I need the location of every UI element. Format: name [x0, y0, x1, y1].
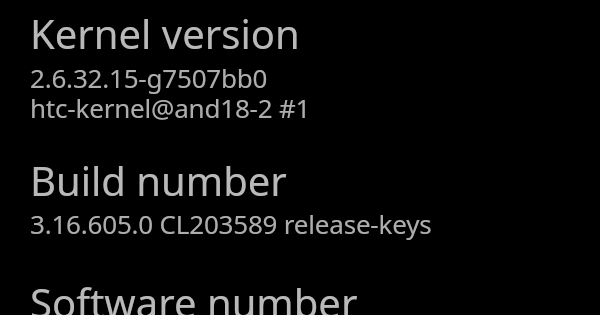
staticText: Kernel version — [30, 6, 300, 60]
staticText: 3.16.605.0 CL203589 release-keys — [30, 206, 432, 241]
button[interactable]: Build number — [0, 153, 600, 275]
staticText: Build number — [30, 153, 287, 207]
staticText: Software number — [30, 275, 358, 315]
button[interactable]: Software number — [0, 275, 600, 315]
staticText: 2.6.32.15-g7507bb0 — [30, 60, 268, 95]
staticText: htc-kernel@and18-2 #1 — [30, 90, 311, 125]
button[interactable]: Kernel version — [0, 6, 600, 153]
